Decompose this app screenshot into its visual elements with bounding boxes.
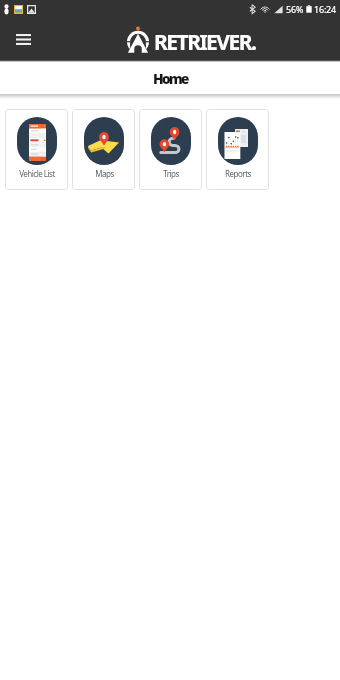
staticText: Trips: [163, 168, 179, 179]
staticText: Maps: [95, 168, 114, 179]
button[interactable]: Reports: [206, 109, 269, 190]
staticText: Vehicle List: [19, 168, 55, 179]
button[interactable]: Maps: [72, 109, 135, 190]
staticText: 16:24: [314, 3, 337, 15]
button[interactable]: Vehicle List: [5, 109, 68, 190]
staticText: Reports: [225, 168, 251, 179]
button[interactable]: Trips: [139, 109, 202, 190]
staticText: Home: [153, 69, 188, 88]
staticText: 56%: [286, 3, 304, 15]
staticText: RETRIEVER.: [154, 28, 256, 57]
button[interactable]: Open navigation menu: [8, 24, 38, 54]
